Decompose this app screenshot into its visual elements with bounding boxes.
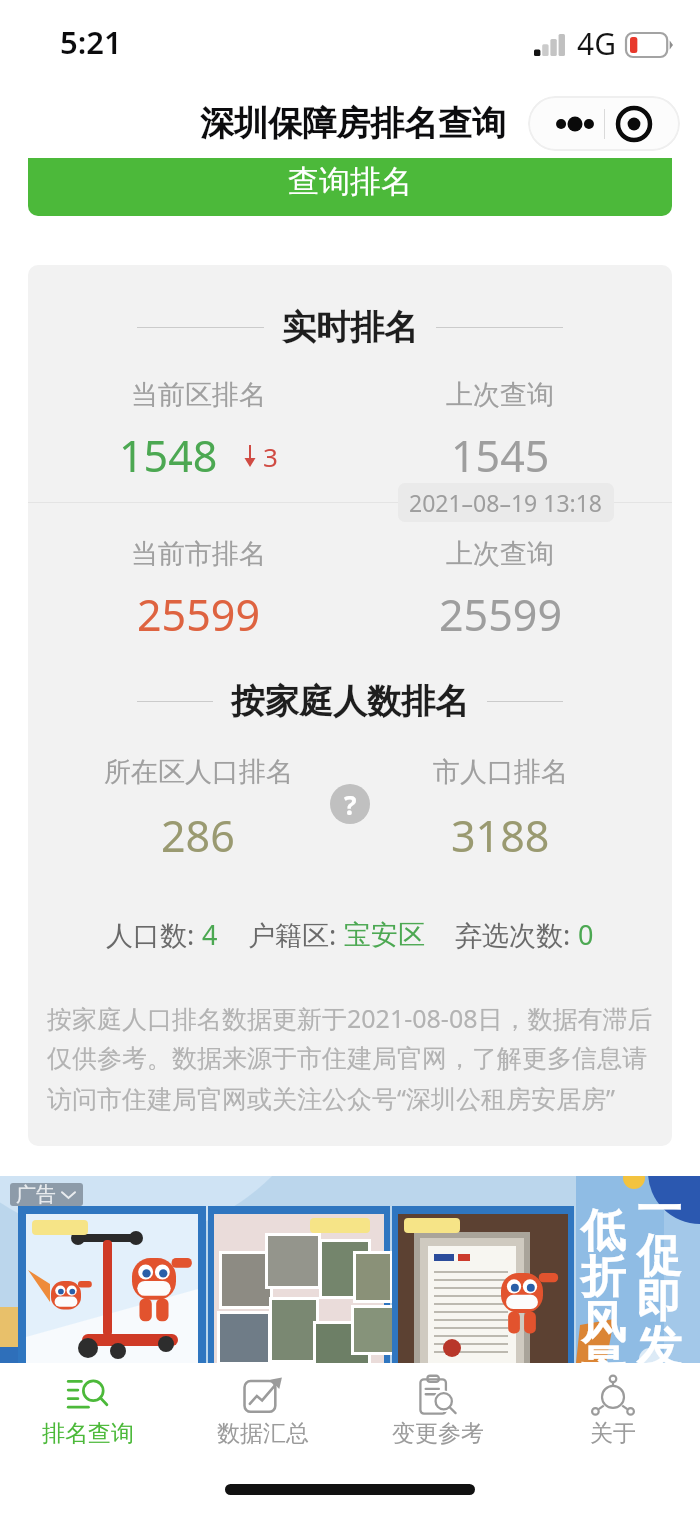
button[interactable]: Advertisement	[0, 1176, 700, 1363]
staticText: 5:21	[60, 21, 122, 63]
staticText: 市人口排名	[433, 755, 568, 789]
staticText: 户籍区:	[248, 916, 344, 953]
staticText: 0	[578, 916, 594, 953]
button[interactable]: Ad info	[10, 1183, 83, 1206]
staticText: 变更参考	[392, 1419, 484, 1448]
button[interactable]: 查询排名	[28, 158, 672, 216]
staticText: 实时排名	[282, 306, 418, 349]
staticText: 25599	[439, 585, 562, 644]
staticText: 深圳保障房排名查询	[200, 102, 506, 145]
staticText: 宝安区	[344, 918, 425, 952]
button[interactable]: 变更参考	[350, 1363, 525, 1463]
staticText: 所在区人口排名	[104, 755, 293, 789]
staticText: 一 促 即 发	[635, 1182, 683, 1363]
staticText: 查询排名	[288, 162, 412, 201]
button[interactable]: Help	[330, 784, 370, 824]
staticText: 按家庭人口排名数据更新于2021-08-08日，数据有滞后仅供参考。数据来源于市…	[47, 1001, 653, 1115]
staticText: 人口数:	[106, 916, 202, 953]
staticText: 上次查询	[446, 378, 554, 412]
button[interactable]: 排名查询	[0, 1363, 175, 1463]
staticText: 3	[263, 439, 278, 474]
staticText: 1548	[119, 426, 218, 485]
staticText: 当前市排名	[131, 537, 266, 571]
staticText: ?	[344, 787, 357, 822]
staticText: 1545	[451, 426, 550, 485]
button[interactable]: 关于	[525, 1363, 700, 1463]
staticText: 当前区排名	[131, 378, 266, 412]
staticText: 3188	[451, 806, 550, 865]
staticText: 数据汇总	[217, 1419, 309, 1448]
staticText: 上次查询	[446, 537, 554, 571]
staticText: 25599	[137, 585, 260, 644]
staticText: 4G	[577, 23, 616, 64]
staticText: 关于	[590, 1419, 636, 1448]
staticText: 广告	[16, 1183, 56, 1205]
staticText: 弃选次数:	[455, 916, 578, 953]
button[interactable]: Menu options	[528, 96, 680, 151]
staticText: 排名查询	[42, 1419, 134, 1448]
staticText: 4	[202, 916, 218, 953]
staticText: 按家庭人数排名	[231, 680, 469, 723]
button[interactable]: 数据汇总	[175, 1363, 350, 1463]
staticText: 286	[161, 806, 235, 865]
staticText: 2021–08–19 13:18	[409, 487, 603, 518]
staticText: 低 折 风 景	[579, 1203, 627, 1363]
